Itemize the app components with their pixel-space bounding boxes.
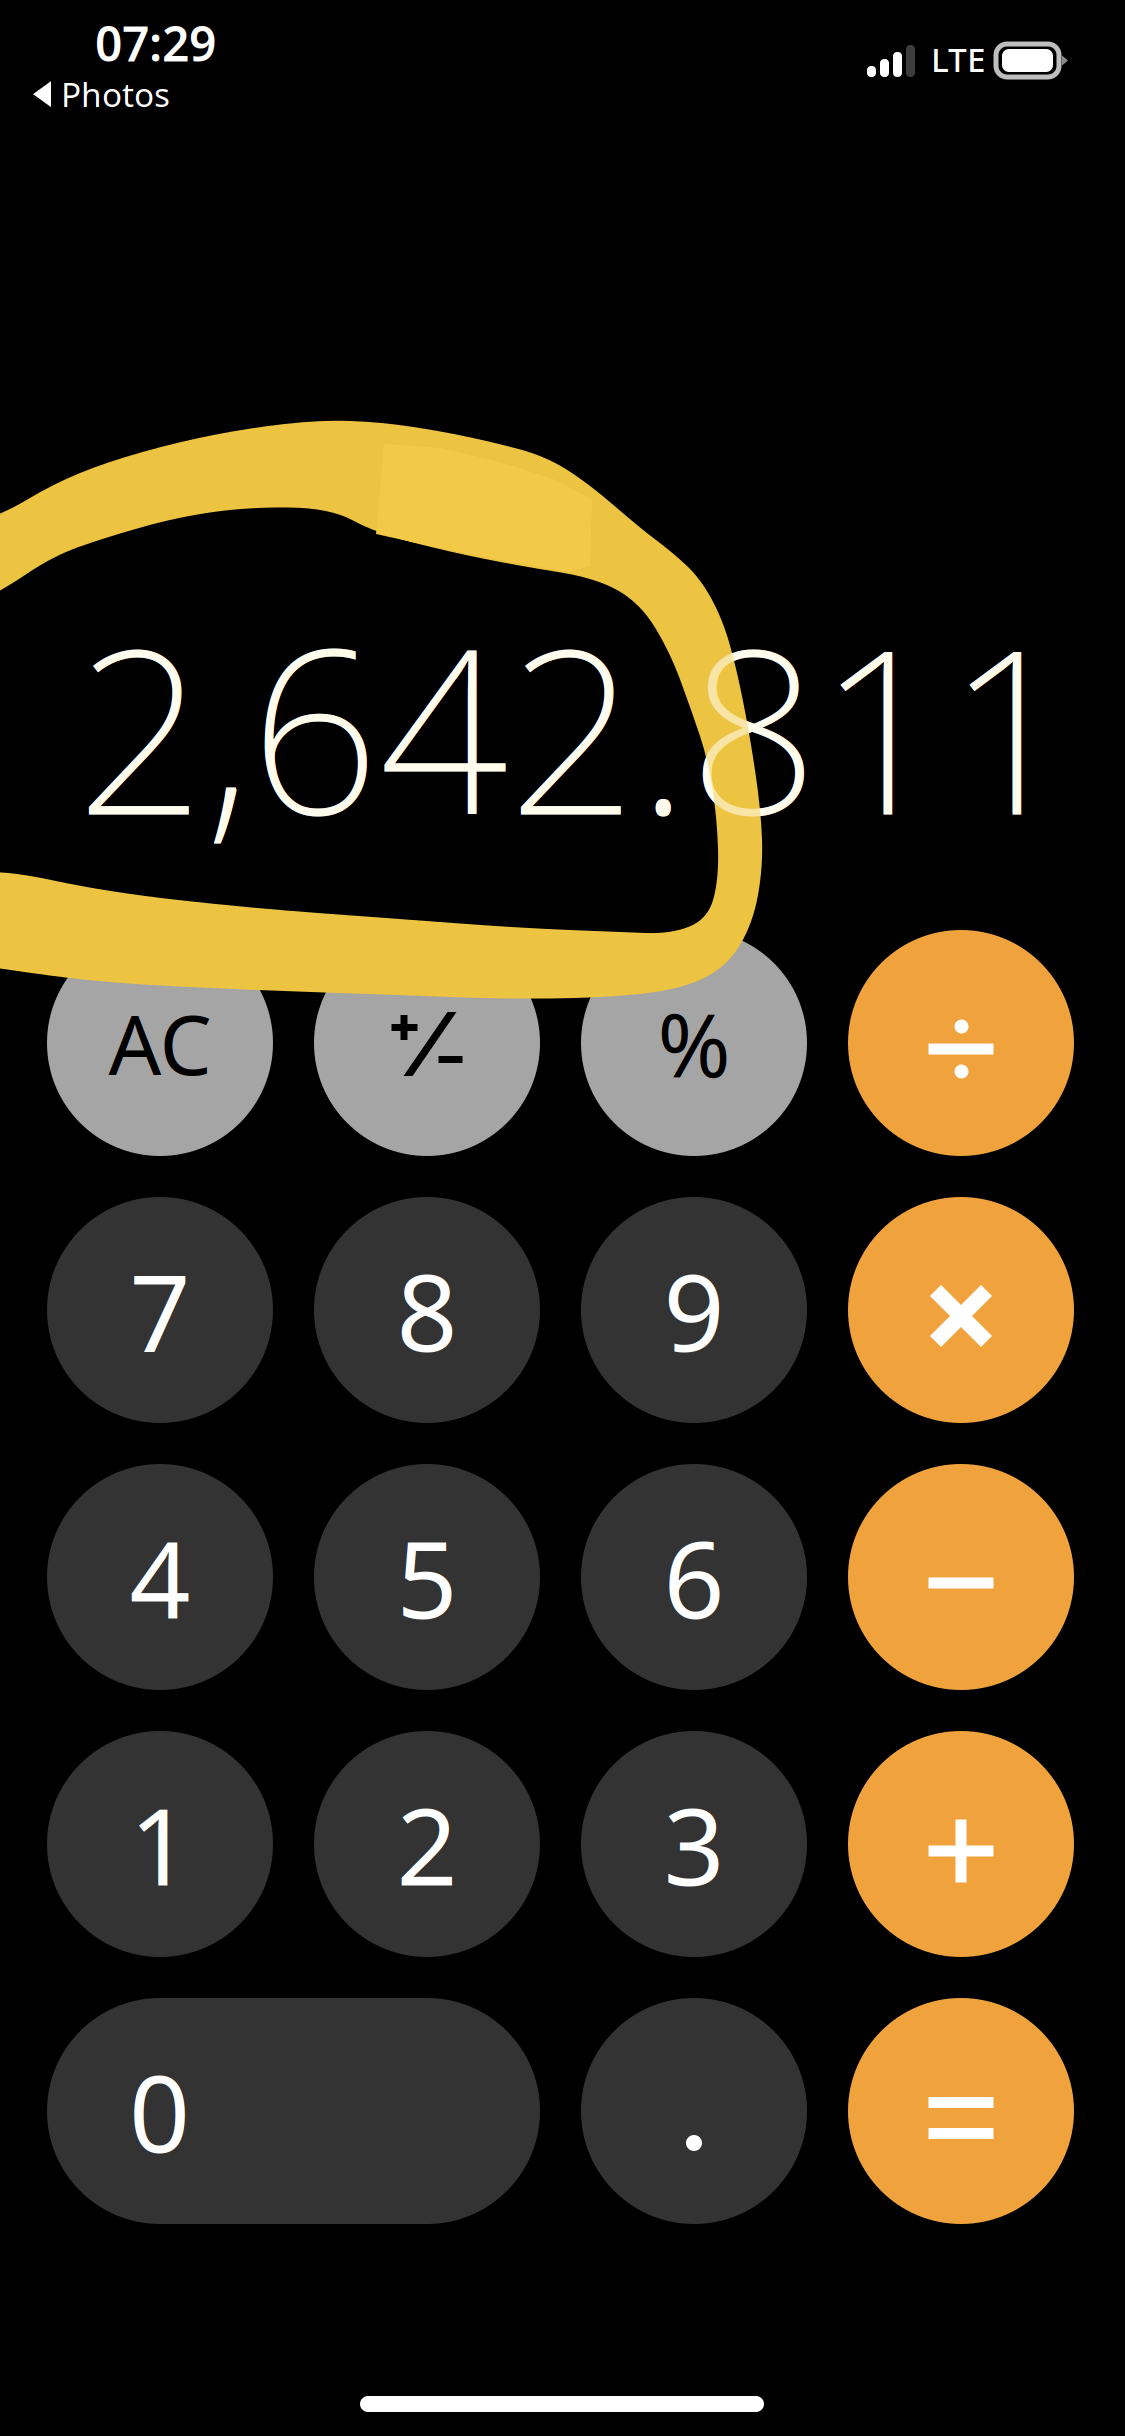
button[interactable]: 0 — [47, 1998, 540, 2224]
button[interactable]: Plus minus — [314, 930, 540, 1156]
button[interactable]: Minus — [848, 1464, 1074, 1690]
staticText: 6 — [663, 1506, 724, 1648]
button[interactable]: Photos — [33, 72, 170, 116]
staticText: 1 — [129, 1773, 190, 1915]
staticText: 07:29 — [95, 11, 216, 75]
staticText: 7 — [129, 1239, 190, 1381]
button[interactable]: 1 — [47, 1731, 273, 1957]
button[interactable]: Multiply — [848, 1197, 1074, 1423]
staticText: Photos — [61, 72, 170, 116]
button[interactable]: 9 — [581, 1197, 807, 1423]
staticText: 4 — [129, 1506, 190, 1648]
staticText: 0 — [129, 2040, 190, 2182]
staticText: 8 — [396, 1239, 457, 1381]
button[interactable]: 4 — [47, 1464, 273, 1690]
button[interactable]: AC — [47, 930, 273, 1156]
staticText: LTE — [931, 37, 986, 81]
staticText: % — [657, 985, 730, 1101]
button[interactable]: Equals — [848, 1998, 1074, 2224]
staticText: AC — [108, 988, 211, 1098]
staticText: 2 — [396, 1773, 457, 1915]
button[interactable]: 3 — [581, 1731, 807, 1957]
staticText: 5 — [396, 1506, 457, 1648]
button[interactable]: Plus — [848, 1731, 1074, 1957]
button[interactable]: 2 — [314, 1731, 540, 1957]
button[interactable]: % — [581, 930, 807, 1156]
button[interactable]: Divide — [848, 930, 1074, 1156]
staticText: 2,642.811 — [76, 576, 1076, 877]
button[interactable]: 6 — [581, 1464, 807, 1690]
button[interactable]: 5 — [314, 1464, 540, 1690]
button[interactable]: Decimal point — [581, 1998, 807, 2224]
staticText: 2,642.811 — [76, 576, 1076, 877]
button[interactable]: 8 — [314, 1197, 540, 1423]
staticText: 3 — [663, 1773, 724, 1915]
staticText: 9 — [663, 1239, 724, 1381]
button[interactable]: 7 — [47, 1197, 273, 1423]
